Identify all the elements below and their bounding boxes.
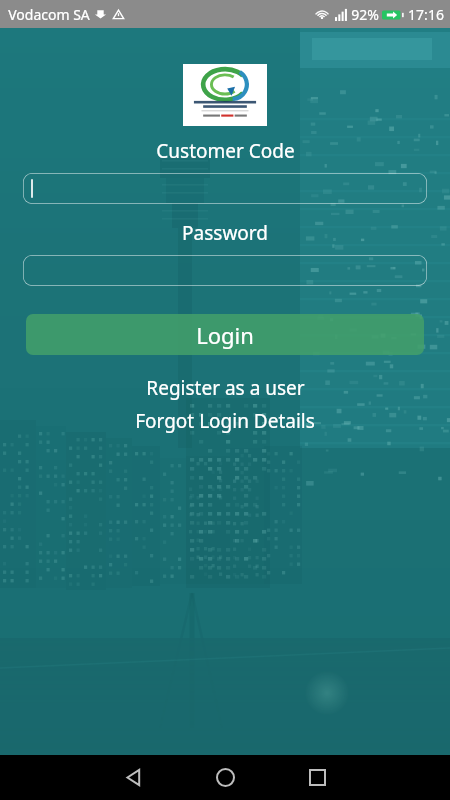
staticText: Login bbox=[196, 320, 254, 350]
button[interactable]: Password input bbox=[23, 255, 427, 286]
button[interactable]: Recent apps bbox=[285, 755, 349, 800]
staticText: Forgot Login Details bbox=[135, 408, 315, 434]
staticText: Vodacom SA bbox=[8, 5, 90, 24]
staticText: Password bbox=[182, 220, 268, 246]
button[interactable]: Register as a user bbox=[90, 374, 360, 402]
staticText: Customer Code bbox=[156, 138, 295, 164]
button[interactable]: Back bbox=[101, 755, 165, 800]
button[interactable]: Forgot Login Details bbox=[90, 407, 360, 435]
staticText: 17:16 bbox=[408, 5, 444, 24]
staticText: Register as a user bbox=[146, 375, 305, 401]
button[interactable]: Home bbox=[193, 755, 257, 800]
staticText: 92% bbox=[351, 5, 379, 24]
button[interactable]: Login bbox=[26, 314, 424, 355]
button[interactable]: Customer Code input bbox=[23, 173, 427, 204]
